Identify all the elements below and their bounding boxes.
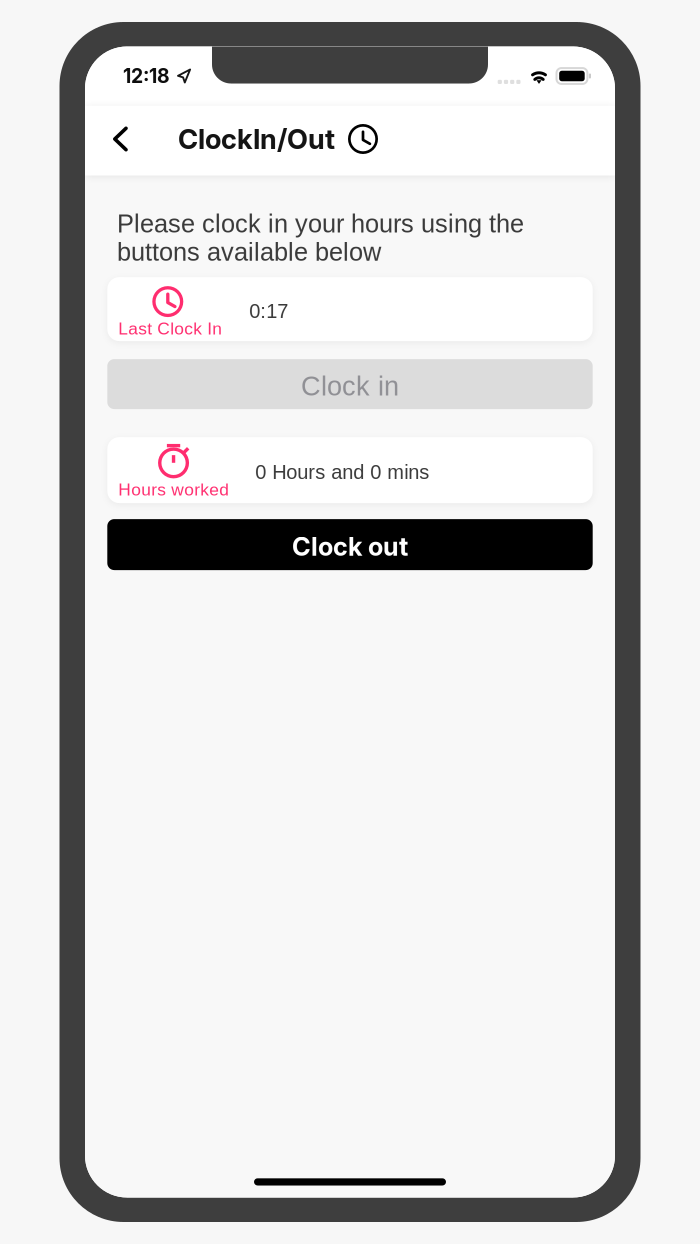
staticText: Please clock in your hours using the but…: [117, 209, 524, 266]
staticText: 0:17: [249, 300, 288, 322]
staticText: Clock in: [301, 371, 399, 401]
staticText: Hours worked: [118, 480, 229, 499]
button[interactable]: Clock out: [107, 519, 593, 570]
staticText: Last Clock In: [118, 319, 222, 338]
staticText: 12:18: [123, 64, 170, 88]
button[interactable]: Back: [85, 104, 150, 174]
button[interactable]: Clock in: [107, 359, 593, 409]
staticText: 0 Hours and 0 mins: [255, 461, 429, 483]
staticText: Clock out: [292, 531, 408, 562]
staticText: ClockIn/Out: [178, 122, 335, 156]
